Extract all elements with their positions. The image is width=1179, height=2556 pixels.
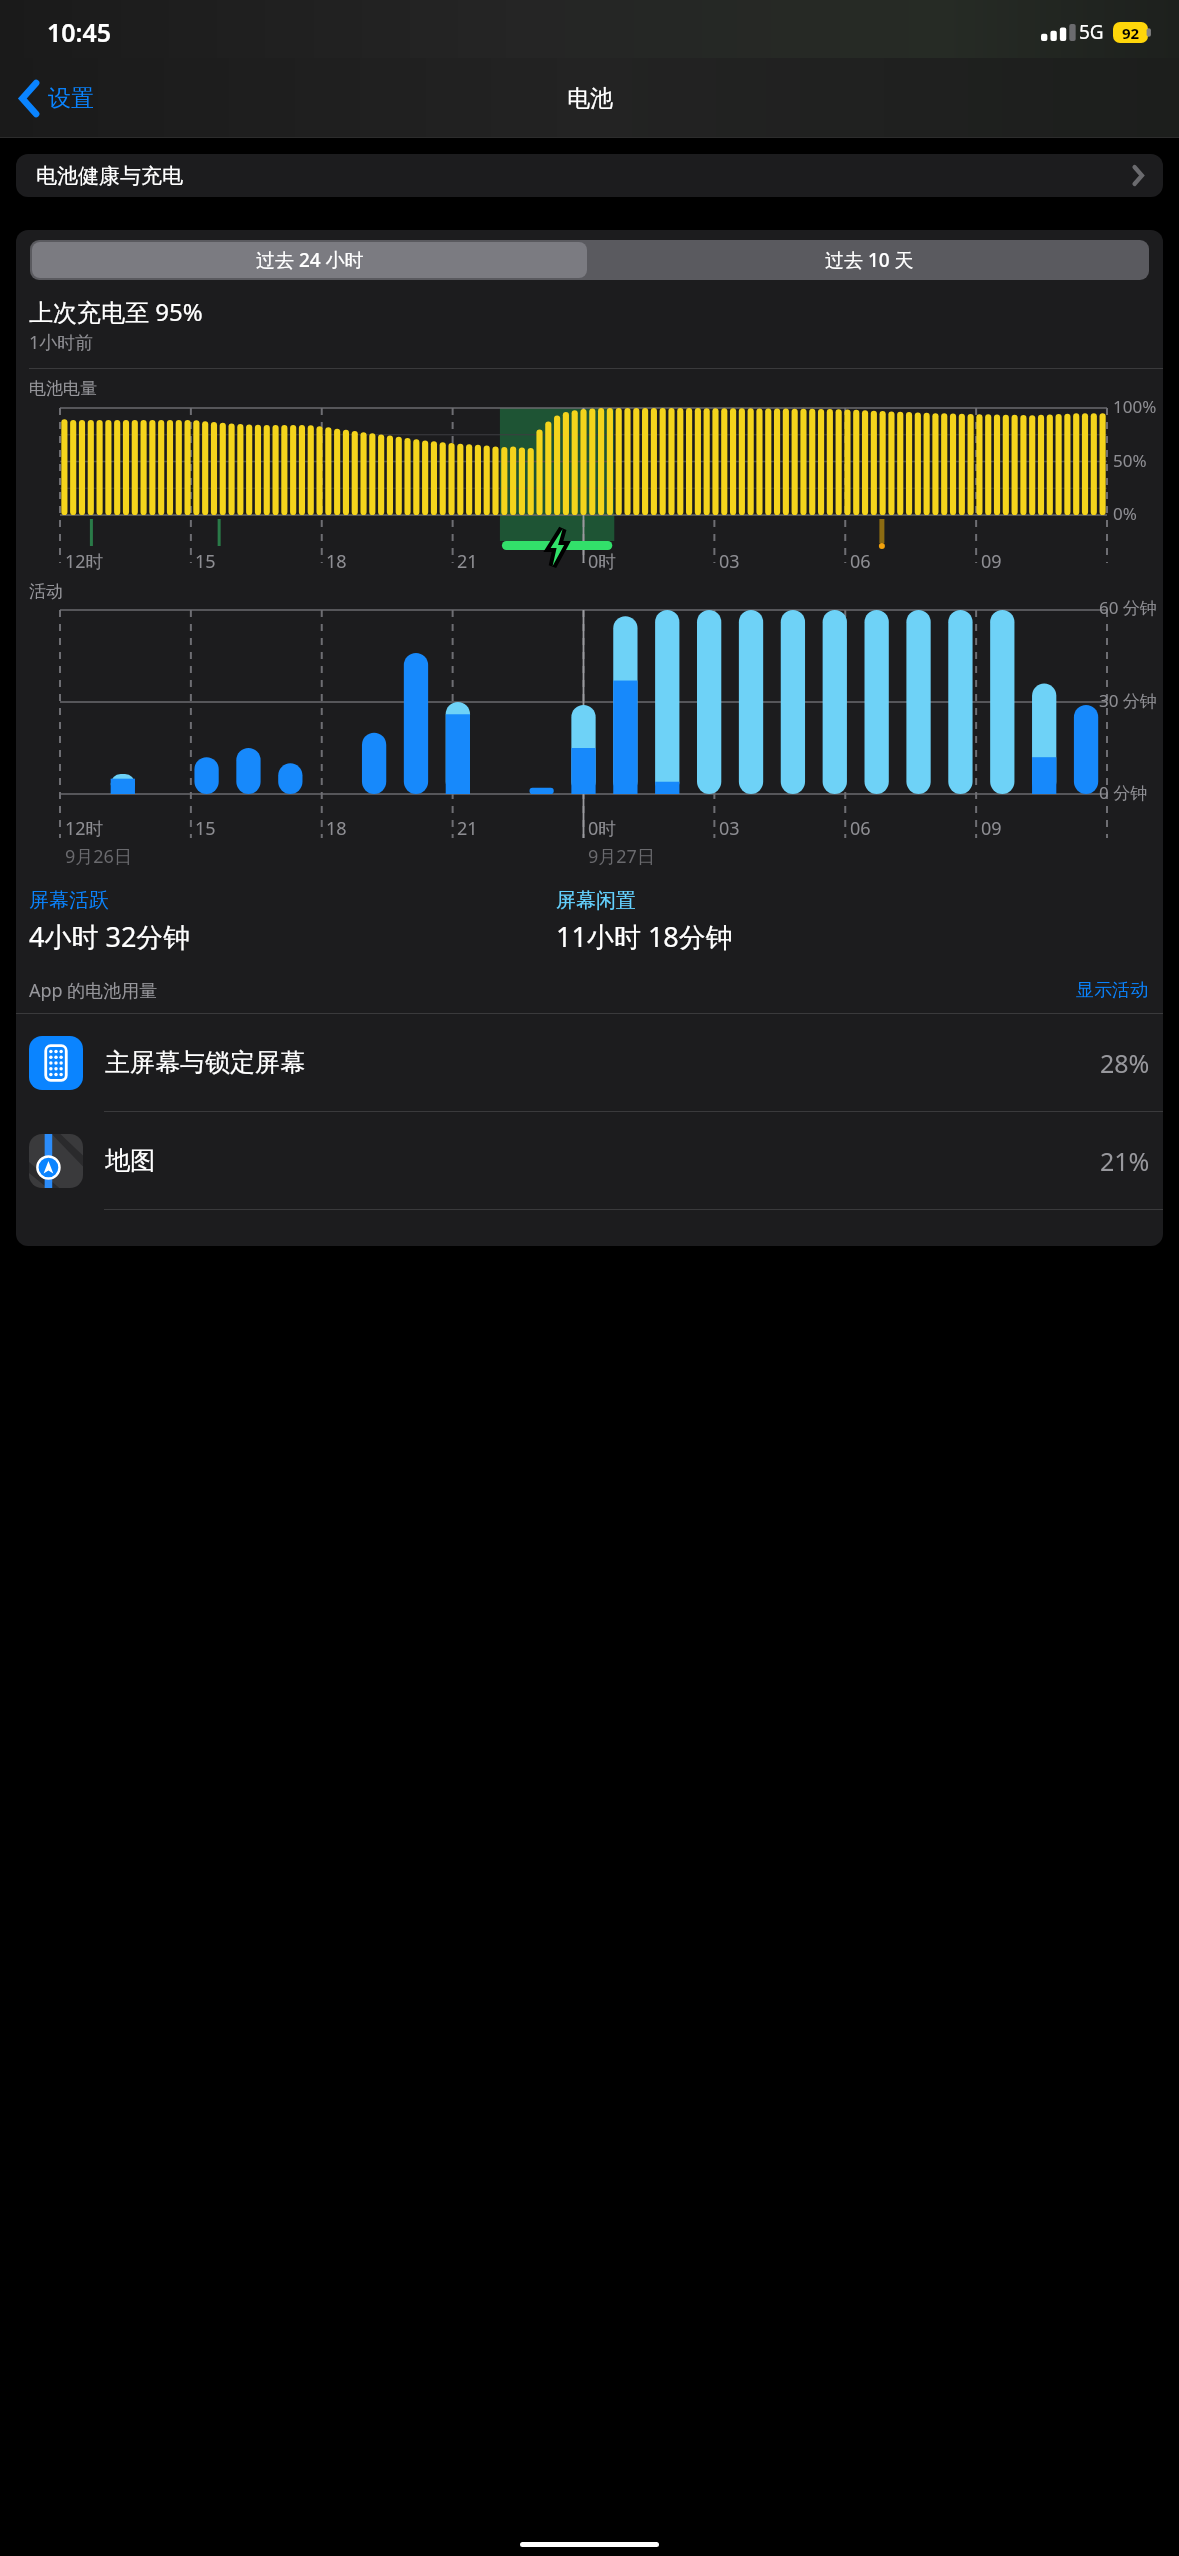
staticText: 21% (1100, 1144, 1150, 1178)
staticText: 100% (1113, 395, 1157, 418)
staticText: 03 (719, 816, 740, 841)
staticText: 活动 (29, 581, 63, 602)
staticText: 09 (981, 816, 1002, 841)
staticText: 9月27日 (588, 844, 655, 869)
other: 地图 (29, 1134, 83, 1188)
staticText: 09 (981, 549, 1002, 574)
staticText: 屏幕活跃 (29, 888, 109, 913)
staticText: 30 分钟 (1099, 689, 1157, 712)
staticText: 屏幕闲置 (556, 888, 636, 913)
staticText: 12时 (65, 549, 104, 574)
staticText: 显示活动 (1076, 979, 1148, 1002)
button[interactable]: 设置 (14, 74, 100, 123)
staticText: 过去 24 小时 (256, 247, 364, 273)
staticText: 过去 10 天 (825, 247, 914, 273)
staticText: 15 (195, 549, 216, 574)
staticText: 10:45 (47, 15, 112, 49)
staticText: 0时 (588, 549, 617, 574)
staticText: 地图 (105, 1145, 155, 1176)
button[interactable]: 过去 24 小时 (32, 242, 587, 278)
staticText: 18 (326, 549, 347, 574)
staticText: 主屏幕与锁定屏幕 (105, 1047, 305, 1078)
staticText: 电池健康与充电 (36, 163, 183, 189)
staticText: 0% (1113, 502, 1137, 525)
staticText: 电池 (567, 84, 613, 113)
staticText: 15 (195, 816, 216, 841)
staticText: 0时 (588, 816, 617, 841)
staticText: 1小时前 (29, 330, 94, 355)
staticText: 5G (1079, 19, 1104, 45)
staticText: 设置 (48, 84, 94, 113)
staticText: 21 (457, 549, 478, 574)
staticText: 50% (1113, 449, 1147, 472)
staticText: 上次充电至 95% (29, 295, 203, 328)
staticText: 03 (719, 549, 740, 574)
other: 主屏幕与锁定屏幕 (29, 1036, 83, 1090)
button[interactable]: 显示活动 (1074, 977, 1150, 1004)
staticText: 9月26日 (65, 844, 132, 869)
staticText: 21 (457, 816, 478, 841)
staticText: 06 (850, 816, 871, 841)
staticText: 60 分钟 (1099, 596, 1157, 619)
staticText: 12时 (65, 816, 104, 841)
button[interactable]: 电池健康与充电 (16, 154, 1163, 197)
button[interactable]: 过去 10 天 (589, 240, 1149, 280)
staticText: 电池电量 (29, 378, 97, 399)
staticText: 28% (1100, 1046, 1150, 1080)
staticText: 06 (850, 549, 871, 574)
staticText: 4小时 32分钟 (29, 918, 191, 955)
staticText: 11小时 18分钟 (556, 918, 733, 955)
button[interactable]: 主屏幕与锁定屏幕 (16, 1014, 1163, 1111)
staticText: App 的电池用量 (29, 978, 158, 1003)
staticText: 18 (326, 816, 347, 841)
staticText: 0 分钟 (1099, 781, 1148, 804)
button[interactable]: 地图 (16, 1112, 1163, 1209)
staticText: 92 (1122, 23, 1140, 43)
